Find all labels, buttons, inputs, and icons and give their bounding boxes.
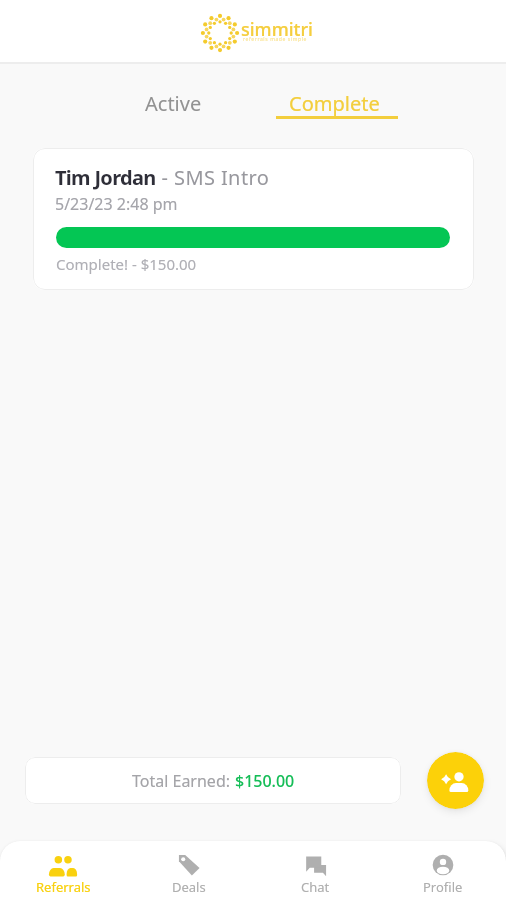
staticText: simmitri [241, 17, 313, 42]
staticText: $150.00 [235, 770, 295, 792]
staticText: Referrals [36, 878, 91, 896]
button[interactable]: Complete [254, 90, 415, 152]
staticText: Tim Jordan [55, 164, 156, 191]
button[interactable]: Referrals [0, 841, 126, 900]
button[interactable]: Add referral [427, 752, 484, 809]
staticText: - SMS Intro [156, 164, 270, 191]
button[interactable]: Active [93, 90, 254, 152]
staticText: 5/23/23 2:48 pm [55, 193, 178, 215]
staticText: Active [145, 90, 202, 117]
button[interactable]: Total Earned: [25, 757, 401, 804]
staticText: Deals [172, 878, 206, 896]
staticText: referrals made simple [243, 36, 307, 43]
button[interactable]: Chat [252, 841, 379, 900]
button[interactable]: Deals [126, 841, 252, 900]
button[interactable]: Profile [379, 841, 506, 900]
staticText: Complete [289, 90, 380, 117]
staticText: Profile [423, 878, 463, 896]
staticText: Total Earned: [132, 770, 235, 792]
staticText: Chat [301, 878, 330, 896]
button[interactable]: Tim Jordan [33, 148, 474, 290]
staticText: Complete! - $150.00 [56, 254, 197, 274]
